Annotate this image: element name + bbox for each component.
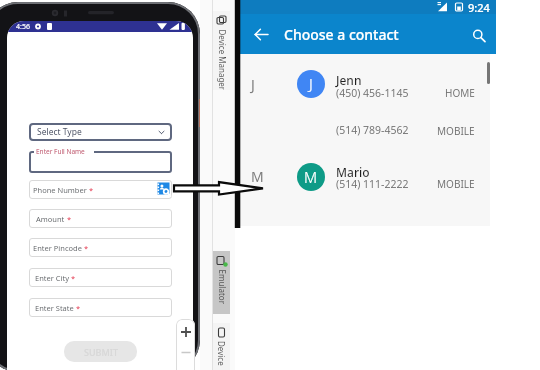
staticText: Select Type — [37, 126, 82, 138]
button[interactable]: Enter City — [29, 268, 172, 287]
button[interactable]: M — [240, 153, 490, 199]
staticText: Jenn — [336, 72, 362, 88]
staticText: Enter Pincode — [33, 243, 82, 253]
button[interactable]: Device — [213, 323, 230, 370]
staticText: * — [65, 214, 72, 224]
staticText: (514) 789-4562 — [336, 123, 409, 137]
button[interactable]: Enter State — [29, 298, 172, 317]
staticText: Phone Number — [33, 185, 87, 195]
staticText: MOBILE — [437, 177, 475, 191]
staticText: Choose a contact — [284, 25, 399, 44]
button[interactable]: (514) 789-4562 — [240, 122, 490, 140]
staticText: J — [309, 74, 313, 94]
staticText: Amount — [36, 214, 65, 224]
staticText: M — [304, 167, 318, 187]
staticText: J — [251, 75, 255, 94]
button[interactable]: Phone Number — [29, 180, 172, 199]
staticText: Enter Full Name — [36, 147, 85, 156]
staticText: * — [87, 185, 94, 195]
staticText: Device Manager — [216, 29, 227, 89]
button[interactable]: Pick a contact — [157, 182, 172, 197]
staticText: 9:24 — [468, 0, 490, 14]
staticText: M — [251, 167, 264, 186]
staticText: Enter State — [35, 303, 74, 313]
button[interactable]: Device Manager — [213, 11, 230, 90]
button[interactable]: Emulator — [213, 251, 230, 314]
staticText: Mario — [336, 164, 370, 180]
staticText: * — [82, 243, 89, 253]
staticText: HOME — [445, 86, 475, 100]
staticText: MOBILE — [437, 124, 475, 138]
button[interactable]: J — [240, 60, 490, 106]
staticText: SUBMIT — [84, 346, 118, 358]
button[interactable]: SUBMIT — [64, 341, 137, 362]
staticText: Enter City — [35, 273, 69, 283]
staticText: Emulator — [216, 269, 227, 304]
staticText: * — [69, 273, 76, 283]
staticText: Device — [216, 341, 227, 366]
button[interactable] — [29, 151, 172, 173]
button[interactable]: Back — [249, 22, 273, 46]
staticText: (450) 456-1145 — [336, 86, 409, 100]
staticText: (514) 111-2222 — [336, 177, 409, 191]
button[interactable]: Enter Pincode — [29, 238, 172, 257]
button[interactable]: Amount — [29, 209, 172, 228]
button[interactable]: Select Type — [29, 123, 172, 141]
staticText: 4:56 — [16, 22, 30, 32]
button[interactable]: Search — [469, 26, 491, 48]
staticText: * — [74, 303, 81, 313]
